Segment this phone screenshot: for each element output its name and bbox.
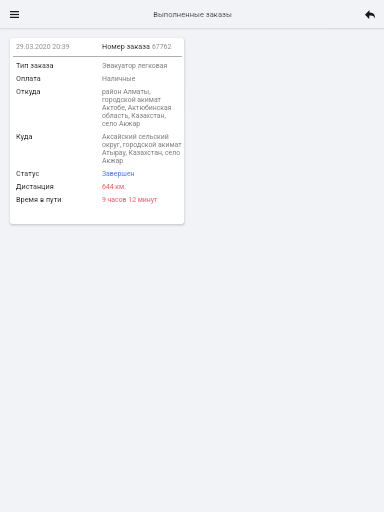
staticText: 644 км.	[102, 183, 126, 191]
button[interactable]: Open navigation menu	[0, 0, 28, 28]
staticText: Дистанция	[16, 183, 102, 191]
staticText: 67762	[152, 43, 172, 51]
staticText: Откуда	[16, 88, 102, 96]
staticText: 29.03.2020 20:39	[16, 43, 102, 51]
staticText: Время в пути	[16, 196, 102, 204]
staticText: Завершен	[102, 170, 135, 178]
button[interactable]: 29.03.2020 20:39	[10, 38, 184, 224]
staticText: Оплата	[16, 75, 102, 83]
staticText: Аксайский сельский округ, городской аким…	[102, 133, 182, 165]
staticText: Номер заказа	[102, 43, 152, 51]
staticText: Эвакуатор легковая	[102, 62, 168, 70]
button[interactable]: Back	[356, 0, 384, 28]
staticText: Выполненные заказы	[153, 10, 232, 19]
staticText: Тип заказа	[16, 62, 102, 70]
staticText: Куда	[16, 133, 102, 141]
staticText: Статус	[16, 170, 102, 178]
staticText: Наличные	[102, 75, 136, 83]
staticText: район Алматы, городской акимат Актобе, А…	[102, 88, 172, 128]
staticText: 9 часов 12 минут	[102, 196, 158, 204]
